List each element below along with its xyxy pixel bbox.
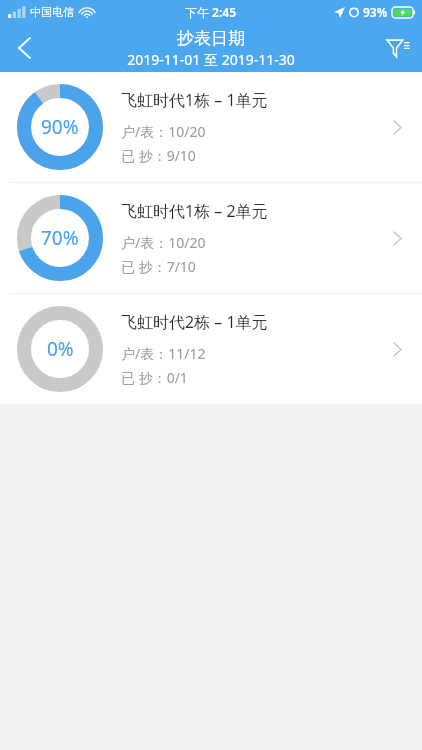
staticText: 70% bbox=[41, 225, 79, 251]
staticText: 已 抄：9/10 bbox=[121, 146, 196, 165]
button[interactable]: Back bbox=[0, 24, 48, 72]
button[interactable]: 90% bbox=[0, 72, 422, 182]
staticText: 90% bbox=[41, 114, 79, 140]
staticText: 2019-11-01 至 2019-11-30 bbox=[127, 50, 295, 69]
button[interactable]: Filter bbox=[374, 24, 422, 72]
staticText: 飞虹时代1栋 – 1单元 bbox=[121, 89, 268, 111]
staticText: 已 抄：7/10 bbox=[121, 257, 196, 276]
staticText: 93% bbox=[363, 4, 388, 20]
button[interactable]: 70% bbox=[0, 183, 422, 293]
button[interactable]: 0% bbox=[0, 294, 422, 404]
staticText: 0% bbox=[47, 336, 74, 362]
staticText: 抄表日期 bbox=[177, 28, 245, 49]
staticText: 下午 2:45 bbox=[185, 4, 237, 20]
staticText: 户/表：10/20 bbox=[121, 122, 206, 141]
staticText: 飞虹时代2栋 – 1单元 bbox=[121, 311, 268, 333]
staticText: 户/表：11/12 bbox=[121, 344, 206, 363]
staticText: 飞虹时代1栋 – 2单元 bbox=[121, 200, 268, 222]
staticText: 已 抄：0/1 bbox=[121, 368, 188, 387]
staticText: 中国电信 bbox=[30, 5, 74, 19]
staticText: 户/表：10/20 bbox=[121, 233, 206, 252]
